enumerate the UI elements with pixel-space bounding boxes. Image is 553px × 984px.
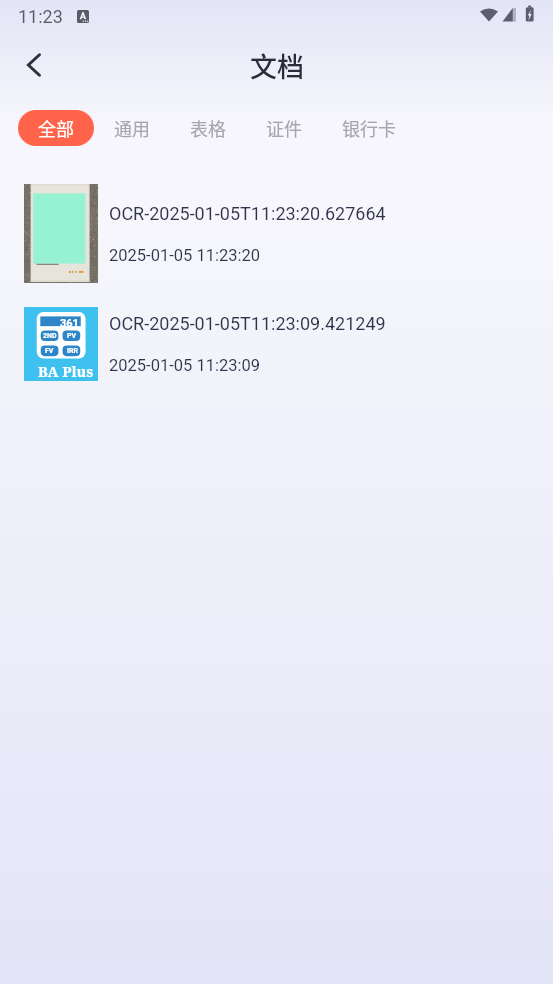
staticText: OCR-2025-01-05T11:23:20.627664 — [109, 203, 386, 224]
staticText: 通用 — [114, 115, 150, 141]
button[interactable]: 银行卡 — [322, 110, 416, 146]
staticText: 表格 — [190, 115, 226, 141]
staticText: PV — [67, 332, 77, 340]
button[interactable]: 通用 — [94, 110, 170, 146]
button[interactable]: 证件 — [246, 110, 322, 146]
button[interactable]: OCR-2025-01-05T11:23:20.627664 — [0, 184, 553, 283]
staticText: IRR — [67, 347, 79, 355]
button[interactable]: 全部 — [18, 110, 94, 146]
staticText: 全部 — [38, 115, 74, 141]
staticText: 2025-01-05 11:23:09 — [109, 356, 261, 375]
staticText: 文档 — [250, 46, 304, 85]
staticText: 证件 — [266, 115, 302, 141]
staticText: 2025-01-05 11:23:20 — [109, 246, 261, 265]
button[interactable]: 表格 — [170, 110, 246, 146]
staticText: 2ND — [43, 332, 57, 340]
staticText: FV — [45, 347, 54, 355]
button[interactable]: 361 — [0, 307, 553, 381]
staticText: 361 — [60, 317, 79, 330]
staticText: OCR-2025-01-05T11:23:09.421249 — [109, 313, 386, 334]
staticText: BA Plus — [38, 361, 94, 381]
staticText: 11:23 — [18, 6, 63, 27]
button[interactable]: Back — [13, 44, 55, 86]
staticText: 银行卡 — [342, 115, 396, 141]
